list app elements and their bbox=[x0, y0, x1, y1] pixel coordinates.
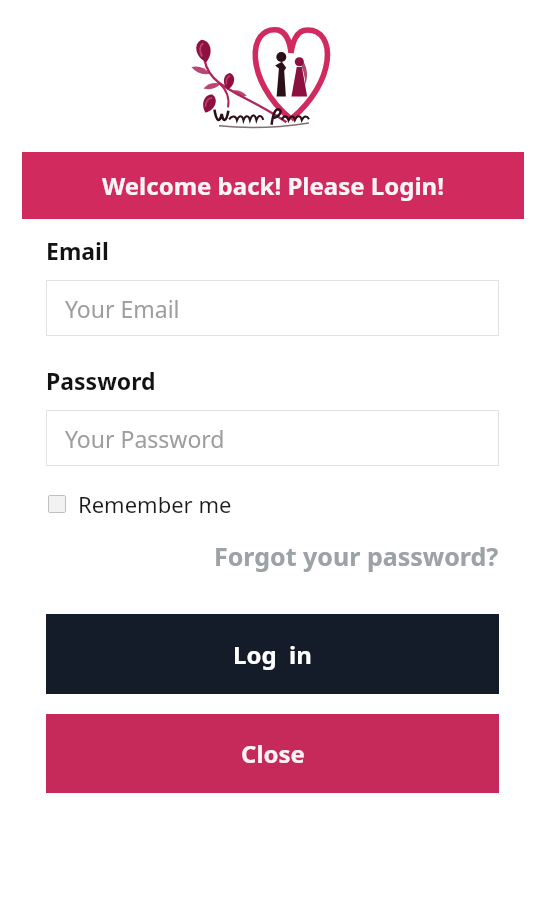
button[interactable]: Log in bbox=[46, 614, 499, 694]
button[interactable]: Remember me bbox=[48, 489, 232, 519]
staticText: Remember me bbox=[78, 489, 232, 519]
button[interactable]: Welcome back! Please Login! bbox=[22, 152, 524, 219]
other: Wedding Phere logo bbox=[183, 20, 363, 132]
staticText: Your Email bbox=[65, 293, 180, 324]
staticText: Welcome back! Please Login! bbox=[102, 169, 444, 202]
staticText: Your Password bbox=[65, 423, 225, 454]
button[interactable]: Close bbox=[46, 714, 499, 793]
staticText: Close bbox=[241, 737, 305, 770]
staticText: Password bbox=[46, 365, 156, 396]
staticText: Log in bbox=[233, 638, 312, 671]
staticText: Email bbox=[46, 235, 109, 266]
button[interactable]: Forgot your password? bbox=[214, 539, 499, 573]
button[interactable]: Your Password bbox=[46, 410, 499, 466]
staticText: Forgot your password? bbox=[214, 539, 499, 573]
button[interactable]: Your Email bbox=[46, 280, 499, 336]
